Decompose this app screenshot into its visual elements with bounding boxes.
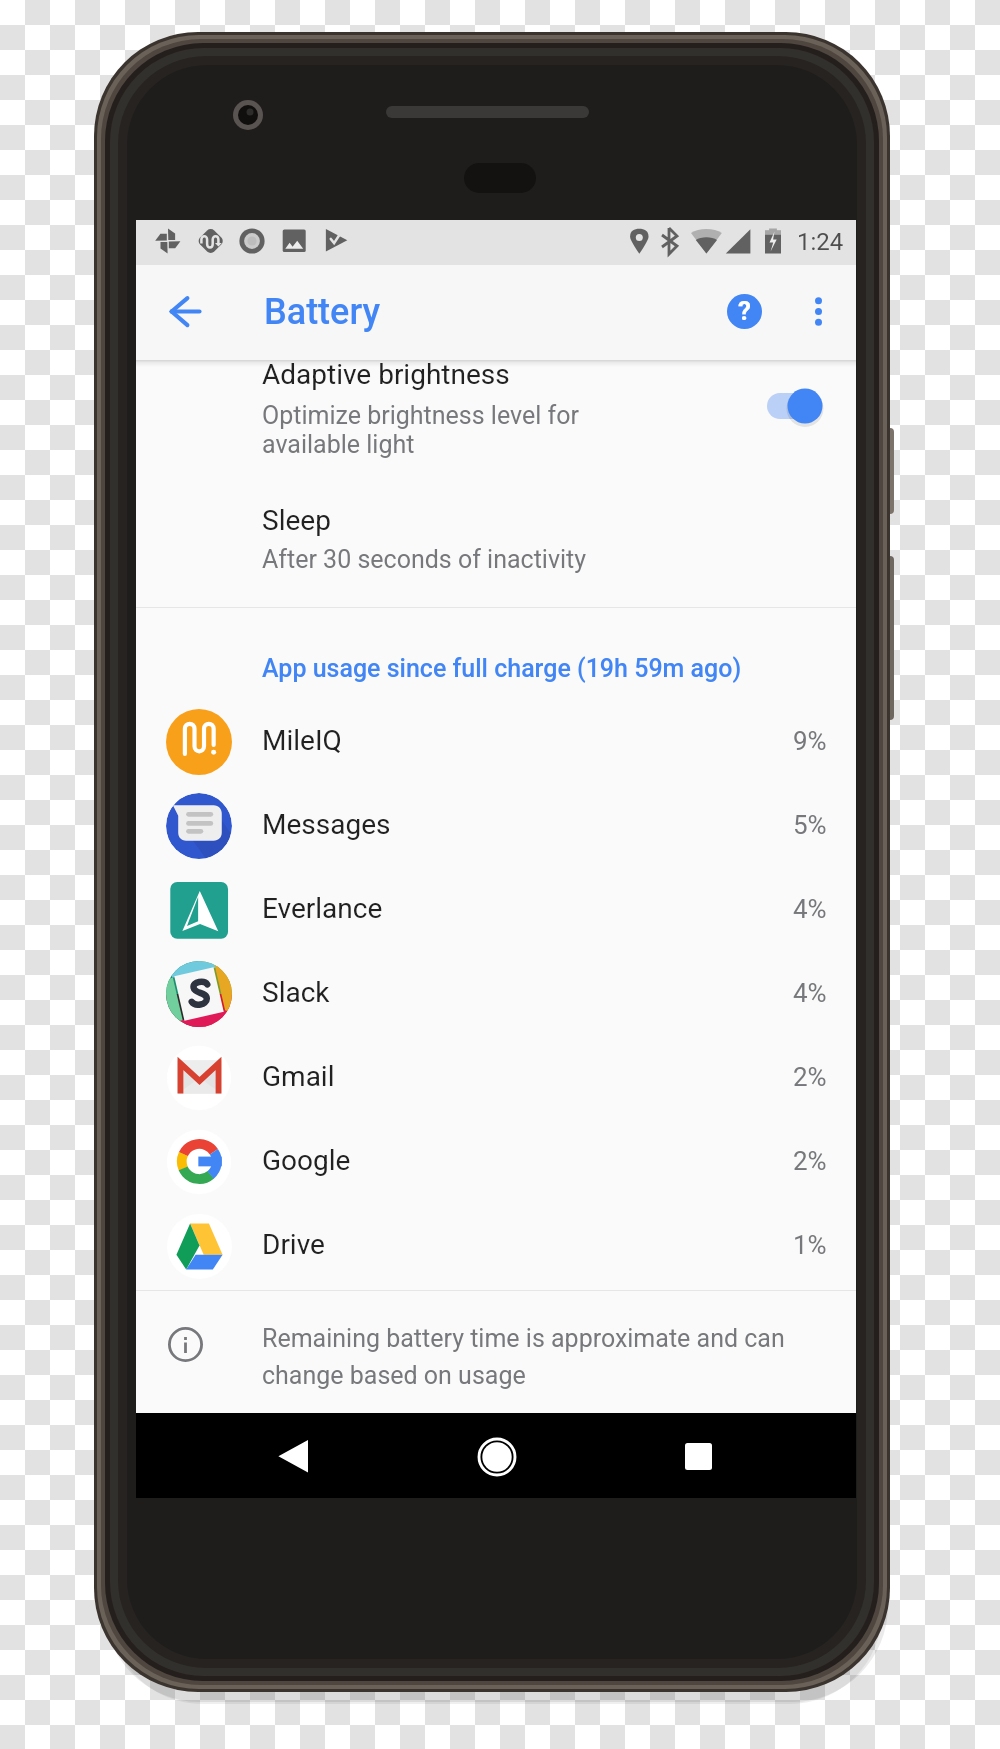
staticText: 2% xyxy=(793,1146,827,1176)
button[interactable]: Gmail xyxy=(136,1036,856,1120)
staticText: 9% xyxy=(793,726,827,756)
staticText: Everlance xyxy=(262,892,383,925)
staticText: 4% xyxy=(793,978,827,1008)
button[interactable]: Messages xyxy=(136,784,856,868)
staticText: 1% xyxy=(793,1230,827,1260)
button[interactable]: Sleep xyxy=(136,507,856,607)
staticText: After 30 seconds of inactivity xyxy=(262,545,587,574)
button[interactable]: Recent apps xyxy=(660,1418,737,1495)
button[interactable]: Everlance xyxy=(136,868,856,952)
staticText: Gmail xyxy=(262,1060,335,1093)
staticText: Adaptive brightness xyxy=(262,358,510,391)
button[interactable]: Adaptive brightness xyxy=(136,360,856,507)
staticText: MileIQ xyxy=(262,724,342,757)
button[interactable]: Home xyxy=(458,1418,535,1495)
staticText: 2% xyxy=(793,1062,827,1092)
staticText: 5% xyxy=(793,810,827,840)
staticText: Remaining battery time is approximate an… xyxy=(262,1324,785,1390)
button[interactable]: Back xyxy=(255,1418,332,1495)
button[interactable]: App usage since full charge (19h 59m ago… xyxy=(136,608,856,700)
button[interactable]: Adaptive brightness toggle xyxy=(744,378,824,434)
staticText: 4% xyxy=(793,894,827,924)
staticText: Slack xyxy=(262,976,330,1009)
button[interactable]: Google xyxy=(136,1120,856,1204)
staticText: Drive xyxy=(262,1228,325,1261)
staticText: Optimize brightness level for available … xyxy=(262,401,579,459)
staticText: 1:24 xyxy=(797,228,844,256)
button[interactable]: Help xyxy=(716,283,773,340)
button[interactable]: Slack xyxy=(136,952,856,1036)
staticText: ? xyxy=(738,296,751,326)
button[interactable]: Drive xyxy=(136,1204,856,1288)
button[interactable]: More options xyxy=(790,283,847,340)
button[interactable]: MileIQ xyxy=(136,700,856,784)
staticText: Sleep xyxy=(262,504,331,537)
staticText: Messages xyxy=(262,808,391,841)
button[interactable]: Remaining battery time is approximate an… xyxy=(136,1291,856,1413)
staticText: Google xyxy=(262,1144,351,1177)
staticText: App usage since full charge (19h 59m ago… xyxy=(262,654,742,683)
staticText: Battery xyxy=(264,291,381,333)
button[interactable]: Navigate up xyxy=(151,278,221,348)
